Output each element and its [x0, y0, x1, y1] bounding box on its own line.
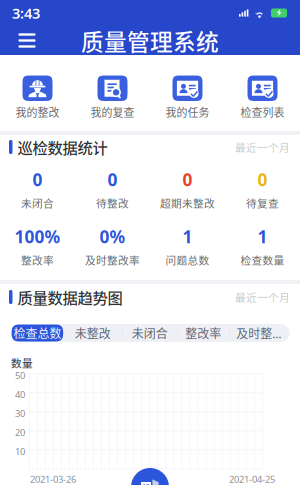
staticText: 3:43: [12, 3, 40, 23]
staticText: 0: [32, 168, 42, 191]
staticText: 40: [15, 388, 25, 401]
staticText: 质量数据趋势图: [17, 286, 122, 308]
button[interactable]: Inspection: [131, 468, 169, 485]
button[interactable]: 我的任务: [150, 75, 225, 121]
staticText: 检查数量: [240, 252, 284, 267]
staticText: 整改率: [21, 252, 54, 267]
staticText: 及时整改率: [85, 252, 140, 267]
staticText: 超期未整改: [160, 195, 215, 210]
button[interactable]: 我的复查: [75, 75, 150, 121]
staticText: 未整改: [75, 324, 111, 342]
button[interactable]: 检查列表: [225, 75, 300, 121]
staticText: 2021-04-25: [229, 473, 275, 485]
staticText: 1: [182, 225, 192, 248]
staticText: 20: [15, 426, 25, 439]
staticText: 我的复查: [90, 104, 134, 120]
button[interactable]: 我的整改: [0, 75, 75, 121]
staticText: 待整改: [96, 195, 129, 210]
staticText: 我的整改: [15, 104, 59, 120]
button[interactable]: 整改率: [177, 324, 229, 341]
button[interactable]: 检查总数: [12, 324, 63, 341]
staticText: 及时整...: [236, 324, 281, 342]
button[interactable]: Menu: [8, 26, 46, 54]
staticText: 最近一个月: [235, 289, 290, 305]
staticText: 0: [107, 168, 117, 191]
staticText: 整改率: [185, 324, 221, 342]
staticText: 最近一个月: [235, 139, 290, 155]
button[interactable]: 未闭合: [122, 324, 177, 341]
staticText: 巡检数据统计: [17, 136, 107, 158]
staticText: 2021-03-26: [30, 473, 76, 485]
staticText: 100%: [14, 225, 60, 248]
staticText: 未闭合: [132, 324, 168, 342]
staticText: 质量管理系统: [81, 24, 219, 57]
staticText: 0%: [99, 225, 125, 248]
staticText: 我的任务: [165, 104, 209, 120]
button[interactable]: 未整改: [63, 324, 122, 341]
staticText: 待复查: [246, 195, 279, 210]
staticText: 问题总数: [165, 252, 209, 267]
staticText: 0: [182, 168, 192, 191]
staticText: 30: [15, 407, 25, 420]
staticText: 检查总数: [13, 324, 61, 342]
button[interactable]: 及时整...: [229, 324, 288, 341]
staticText: 未闭合: [21, 195, 54, 210]
staticText: 1: [257, 225, 267, 248]
staticText: 数量: [11, 355, 33, 370]
staticText: 10: [15, 445, 25, 458]
staticText: 0: [257, 168, 267, 191]
staticText: 检查列表: [240, 104, 284, 120]
staticText: 50: [15, 369, 25, 382]
